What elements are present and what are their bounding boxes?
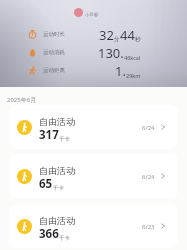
staticText: 运动消耗: [43, 49, 65, 56]
button[interactable]: Profile: [74, 8, 83, 17]
staticText: 6/24: [142, 124, 155, 132]
staticText: 自由活动: [39, 116, 75, 127]
staticText: 自由活动: [39, 165, 75, 176]
staticText: 千卡: [53, 185, 64, 192]
staticText: 自由活动: [39, 215, 75, 226]
staticText: 130.: [98, 44, 124, 61]
staticText: 运动距离: [43, 67, 65, 74]
staticText: 分: [114, 36, 120, 43]
staticText: 2025年6月: [7, 96, 37, 104]
staticText: 6/23: [142, 223, 155, 231]
button[interactable]: 自由活动: [9, 105, 178, 149]
staticText: 秒: [135, 36, 141, 43]
staticText: 小目标: [85, 12, 99, 18]
staticText: 317: [39, 127, 59, 143]
staticText: 1.: [115, 62, 126, 79]
staticText: 千卡: [59, 235, 70, 242]
staticText: 6/24: [142, 173, 155, 181]
staticText: 44: [120, 26, 135, 43]
staticText: 29km: [126, 72, 141, 79]
staticText: 运动时长: [43, 31, 65, 38]
staticText: 千卡: [59, 136, 70, 143]
staticText: 32: [99, 26, 114, 43]
staticText: 65: [39, 176, 53, 192]
staticText: 46kcal: [124, 54, 141, 61]
staticText: 366: [39, 226, 59, 242]
button[interactable]: 自由活动: [9, 154, 178, 198]
button[interactable]: 自由活动: [9, 204, 178, 248]
